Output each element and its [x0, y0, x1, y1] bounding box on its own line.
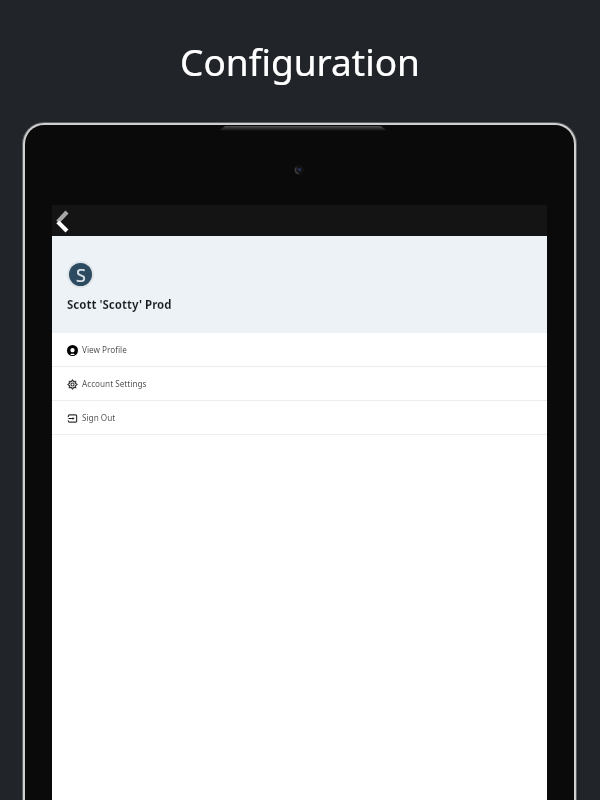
button[interactable]: Account Settings: [52, 367, 547, 400]
button[interactable]: Sign Out: [52, 401, 547, 434]
staticText: View Profile: [82, 344, 127, 355]
staticText: Account Settings: [82, 378, 147, 389]
staticText: Scott 'Scotty' Prod: [67, 297, 172, 313]
button[interactable]: View Profile: [52, 333, 547, 366]
staticText: S: [76, 263, 86, 286]
staticText: Configuration: [180, 36, 420, 86]
button[interactable]: Back: [52, 208, 78, 234]
staticText: Sign Out: [82, 412, 116, 423]
